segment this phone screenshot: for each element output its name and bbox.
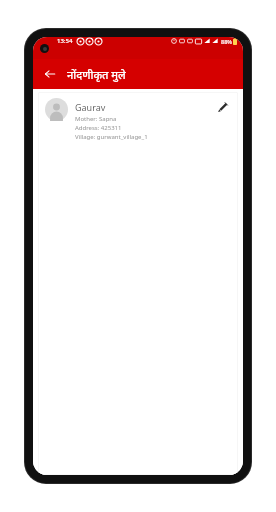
staticText: Gaurav	[75, 101, 106, 113]
staticText: Mother: Sapna	[75, 115, 117, 123]
staticText: Village: gurwant_village_1	[75, 133, 148, 141]
staticText: नोंदणीकृत मुले	[67, 67, 126, 82]
staticText: Address: 425311	[75, 124, 122, 132]
staticText: 88%	[221, 38, 232, 45]
staticText: 13:54	[57, 37, 73, 45]
button[interactable]: Gaurav	[38, 92, 238, 475]
button[interactable]: Edit	[213, 98, 231, 116]
button[interactable]: Back	[39, 63, 61, 85]
